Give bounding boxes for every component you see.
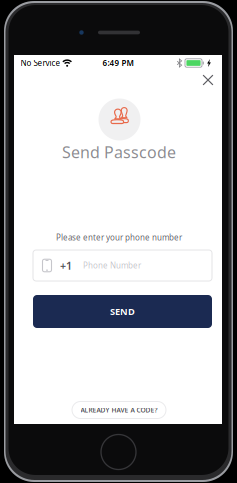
staticText: Please enter your phone number <box>56 232 182 243</box>
staticText: Phone Number <box>83 260 141 271</box>
staticText: Send Passcode <box>62 141 176 163</box>
button[interactable]: ALREADY HAVE A CODE? <box>72 401 166 418</box>
staticText: 6:49 PM <box>102 58 133 68</box>
staticText: +1 <box>60 258 72 273</box>
staticText: No Service <box>21 58 61 68</box>
staticText: SEND <box>110 305 135 318</box>
button[interactable]: Close <box>194 68 222 92</box>
button[interactable]: SEND <box>33 295 212 328</box>
staticText: ALREADY HAVE A CODE? <box>80 406 157 414</box>
